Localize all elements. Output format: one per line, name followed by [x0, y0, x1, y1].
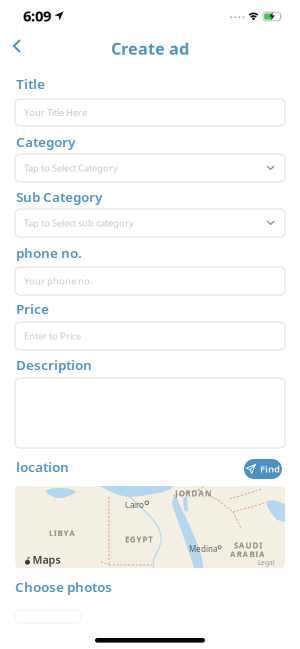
staticText: Legal [258, 558, 275, 567]
staticText: 6:09 [23, 6, 51, 25]
button[interactable]: Find [244, 459, 282, 479]
staticText: SAUDI [234, 540, 262, 551]
staticText: Your Title Here [24, 106, 87, 119]
staticText: Title [16, 75, 45, 93]
staticText: Maps [32, 552, 60, 567]
button[interactable]: Tap to Select Category [15, 154, 285, 182]
staticText: Sub Category [16, 188, 102, 206]
staticText: Create ad [111, 38, 189, 59]
staticText: Tap to Select Category [24, 162, 118, 174]
staticText: Choose photos [15, 578, 112, 596]
staticText: Your phone no. [24, 275, 93, 287]
staticText: LIBYA [49, 528, 75, 539]
staticText: EGYPT [125, 534, 153, 545]
staticText: phone no. [16, 244, 82, 262]
staticText: Cairo [125, 499, 144, 510]
staticText: Enter to Price [24, 330, 81, 342]
staticText: Medina [189, 543, 217, 554]
button[interactable]: Tap to Select sub category [15, 209, 285, 237]
staticText: location [16, 458, 69, 476]
staticText: Find [260, 463, 280, 475]
staticText: Tap to Select sub category [24, 217, 134, 229]
staticText: Price [16, 300, 49, 318]
staticText: Description [16, 356, 92, 374]
staticText: JORDAN [175, 488, 212, 499]
staticText: ARABIA [230, 549, 265, 560]
button[interactable]: Add photo [15, 610, 81, 623]
button[interactable]: Back [7, 34, 27, 58]
staticText: Category [16, 133, 75, 151]
